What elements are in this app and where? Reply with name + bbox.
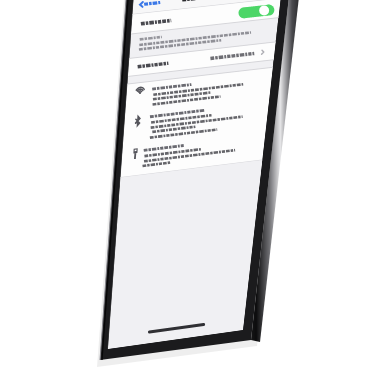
button[interactable]: iPhone showing Personal Hotspot settings [0,0,390,390]
